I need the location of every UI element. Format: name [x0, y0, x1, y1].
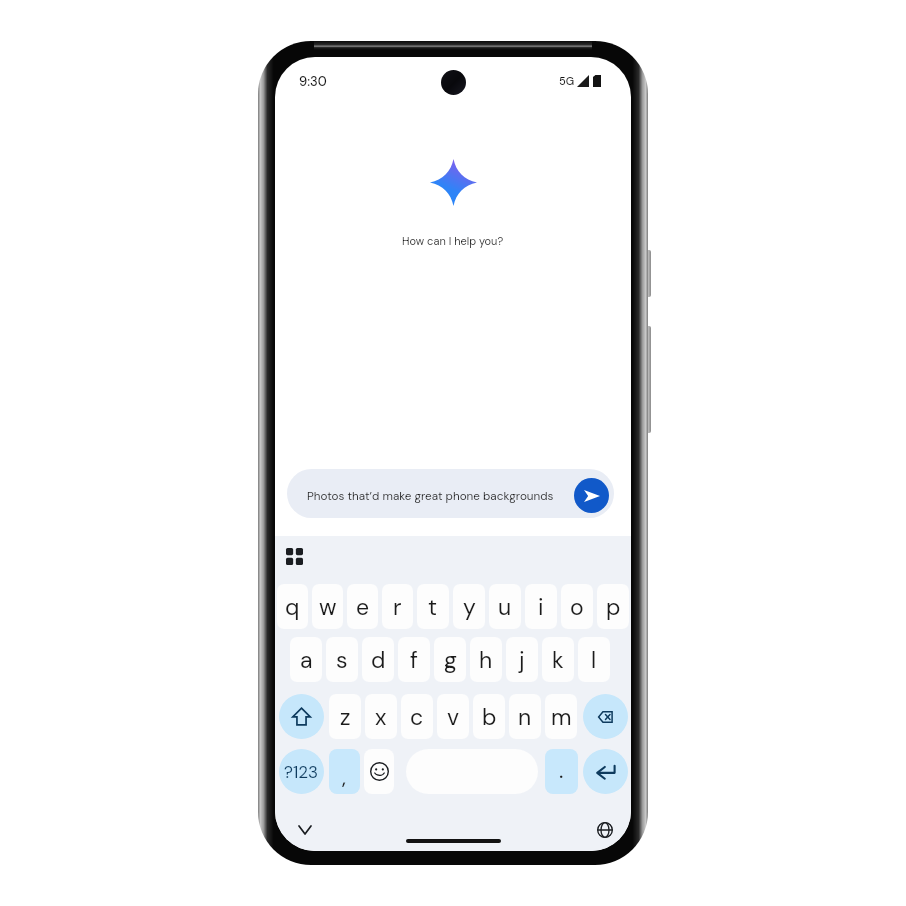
- button[interactable]: z: [329, 694, 361, 739]
- button[interactable]: l: [578, 637, 610, 682]
- button[interactable]: Change language: [593, 818, 617, 842]
- button[interactable]: i: [525, 584, 557, 629]
- staticText: 5G: [559, 74, 575, 88]
- button[interactable]: Enter: [582, 749, 629, 794]
- button[interactable]: w: [312, 584, 343, 629]
- staticText: e: [356, 592, 370, 622]
- staticText: n: [518, 702, 532, 732]
- button[interactable]: m: [545, 694, 577, 739]
- button[interactable]: Photos that’d make great phone backgroun…: [287, 469, 614, 518]
- button[interactable]: Keyboard tools: [280, 542, 308, 570]
- staticText: q: [285, 592, 300, 622]
- button[interactable]: y: [453, 584, 485, 629]
- button[interactable]: j: [506, 637, 538, 682]
- button[interactable]: b: [473, 694, 505, 739]
- button[interactable]: q: [277, 584, 308, 629]
- button[interactable]: f: [398, 637, 430, 682]
- staticText: k: [552, 645, 564, 675]
- staticText: a: [300, 645, 313, 675]
- button[interactable]: n: [509, 694, 541, 739]
- staticText: y: [463, 592, 476, 622]
- button[interactable]: h: [470, 637, 502, 682]
- button[interactable]: Send: [574, 478, 609, 513]
- staticText: d: [371, 645, 386, 675]
- button[interactable]: ?123: [277, 749, 325, 794]
- button[interactable]: Space: [406, 749, 538, 794]
- staticText: i: [538, 592, 544, 622]
- staticText: h: [479, 645, 493, 675]
- staticText: s: [336, 645, 348, 675]
- staticText: .: [559, 756, 564, 785]
- staticText: v: [447, 702, 460, 732]
- staticText: Photos that’d make great phone backgroun…: [307, 488, 573, 503]
- staticText: ,: [342, 762, 347, 791]
- staticText: g: [444, 645, 457, 675]
- staticText: o: [570, 592, 584, 622]
- button[interactable]: p: [597, 584, 629, 629]
- staticText: x: [375, 702, 387, 732]
- button[interactable]: e: [347, 584, 378, 629]
- button[interactable]: k: [542, 637, 574, 682]
- button[interactable]: .: [545, 749, 578, 794]
- staticText: b: [482, 702, 497, 732]
- staticText: t: [428, 592, 438, 622]
- button[interactable]: x: [365, 694, 397, 739]
- button[interactable]: v: [437, 694, 469, 739]
- button[interactable]: Hide keyboard: [293, 818, 317, 842]
- staticText: w: [319, 592, 337, 622]
- button[interactable]: u: [489, 584, 521, 629]
- button[interactable]: ,: [329, 749, 360, 794]
- staticText: 9:30: [299, 73, 327, 90]
- button[interactable]: c: [401, 694, 433, 739]
- staticText: z: [340, 702, 351, 732]
- button[interactable]: Backspace: [581, 694, 629, 739]
- staticText: l: [591, 645, 597, 675]
- button[interactable]: d: [362, 637, 394, 682]
- staticText: ?123: [284, 761, 319, 783]
- button[interactable]: Emoji: [364, 749, 394, 794]
- button[interactable]: Shift: [277, 694, 325, 739]
- button[interactable]: o: [561, 584, 593, 629]
- staticText: r: [393, 592, 402, 622]
- staticText: j: [519, 645, 525, 675]
- button[interactable]: g: [434, 637, 466, 682]
- button[interactable]: r: [382, 584, 413, 629]
- button[interactable]: t: [417, 584, 449, 629]
- button[interactable]: s: [326, 637, 358, 682]
- staticText: How can I help you?: [402, 234, 504, 248]
- staticText: u: [498, 592, 512, 622]
- staticText: m: [551, 702, 572, 732]
- staticText: p: [606, 592, 621, 622]
- button[interactable]: a: [290, 637, 322, 682]
- staticText: c: [410, 702, 424, 732]
- staticText: f: [410, 645, 418, 675]
